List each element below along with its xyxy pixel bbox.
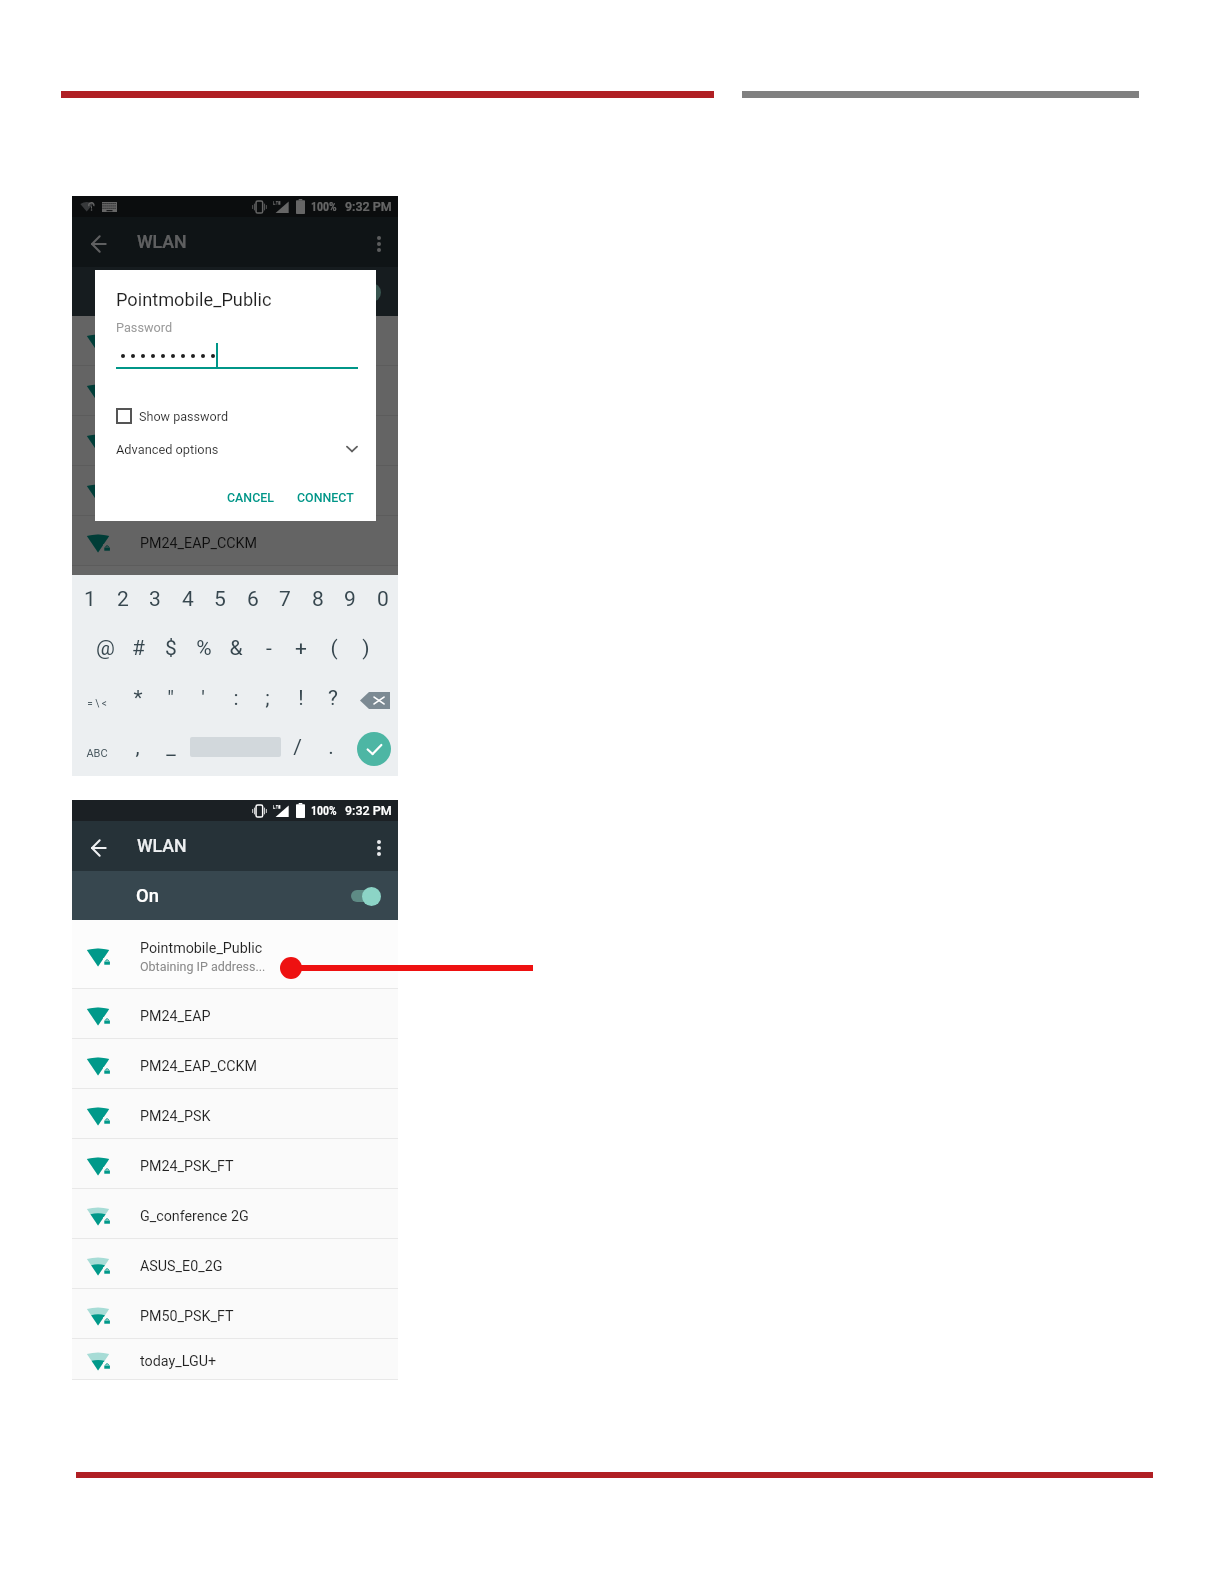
staticText: 0 <box>377 587 389 612</box>
button[interactable]: - <box>252 636 285 662</box>
staticText: ? <box>328 686 338 711</box>
staticText: " <box>167 686 174 711</box>
staticText: 100% <box>311 804 337 818</box>
button[interactable]: % <box>187 636 220 662</box>
button[interactable]: # <box>122 636 155 662</box>
staticText: / <box>293 735 302 760</box>
button[interactable]: More options <box>366 229 392 255</box>
staticText: 1 <box>84 587 96 612</box>
button[interactable]: _ <box>154 735 187 761</box>
staticText: & <box>229 636 243 661</box>
staticText: ) <box>362 636 370 661</box>
staticText: PM24_EAP_CCKM <box>140 1058 258 1075</box>
button[interactable]: 2 <box>106 587 139 613</box>
staticText: CONNECT <box>297 490 354 505</box>
button[interactable]: $ <box>154 636 187 662</box>
button[interactable]: CANCEL <box>221 482 280 512</box>
button[interactable]: G_conference 2G <box>72 1189 398 1239</box>
button[interactable]: @ <box>89 636 122 662</box>
staticText: ABC <box>86 747 108 760</box>
button[interactable]: / <box>281 735 314 761</box>
button[interactable]: , <box>121 735 154 761</box>
button[interactable]: + <box>284 636 317 662</box>
button[interactable]: 1 <box>73 587 106 613</box>
button[interactable]: 8 <box>301 587 334 613</box>
staticText: ASUS_E0_2G <box>140 1258 223 1275</box>
staticText: : <box>233 686 239 711</box>
staticText: _ <box>166 735 176 760</box>
staticText: PM24_EAP <box>140 1008 211 1025</box>
staticText: $ <box>165 636 177 661</box>
staticText: 7 <box>279 587 291 612</box>
button[interactable]: 6 <box>236 587 269 613</box>
staticText: % <box>196 636 212 661</box>
staticText: CANCEL <box>227 490 274 505</box>
button[interactable]: Advanced options <box>116 436 358 462</box>
button[interactable]: . <box>314 735 347 761</box>
staticText: . <box>328 735 334 760</box>
button[interactable]: Enter <box>357 732 391 766</box>
button[interactable]: Show password <box>116 401 229 431</box>
button[interactable]: ; <box>251 686 284 712</box>
button[interactable]: ! <box>284 686 317 712</box>
staticText: PM24_EAP_CCKM <box>140 535 258 552</box>
button[interactable]: ABC <box>73 745 121 761</box>
staticText: 9 <box>344 587 356 612</box>
button[interactable]: & <box>219 636 252 662</box>
staticText: On <box>136 885 159 907</box>
button[interactable]: PM50_PSK_FT <box>72 1289 398 1339</box>
button[interactable]: " <box>154 686 187 712</box>
button[interactable]: ( <box>317 636 350 662</box>
button[interactable]: 0 <box>366 587 399 613</box>
staticText: 100% <box>311 200 337 214</box>
button[interactable]: PM24_PSK_FT <box>72 1139 398 1189</box>
staticText: = \ < <box>87 698 107 710</box>
staticText: Pointmobile_Public <box>140 940 263 957</box>
button[interactable]: PM24_EAP_CCKM <box>72 1039 398 1089</box>
button[interactable]: On <box>72 871 398 920</box>
button[interactable]: * <box>121 686 154 712</box>
button[interactable]: ) <box>349 636 382 662</box>
staticText: 5 <box>214 587 226 612</box>
staticText: 3 <box>149 587 161 612</box>
button[interactable]: : <box>219 686 252 712</box>
button[interactable]: CONNECT <box>291 482 359 512</box>
button[interactable]: Back <box>84 832 112 860</box>
staticText: 9:32 PM <box>345 199 392 214</box>
staticText: Show password <box>139 409 229 424</box>
button[interactable]: Back <box>84 228 112 256</box>
button[interactable]: ASUS_E0_2G <box>72 1239 398 1289</box>
staticText: # <box>132 636 145 661</box>
staticText: PM24_PSK <box>140 1108 211 1125</box>
button[interactable]: today_LGU+ <box>72 1339 398 1380</box>
button[interactable]: 3 <box>138 587 171 613</box>
staticText: 4 <box>182 587 194 612</box>
button[interactable]: 4 <box>171 587 204 613</box>
staticText: Obtaining IP address... <box>140 959 266 974</box>
button[interactable]: 7 <box>268 587 301 613</box>
staticText: ( <box>330 636 338 661</box>
staticText: ! <box>298 686 304 711</box>
staticText: On <box>136 281 159 303</box>
staticText: ; <box>265 686 270 711</box>
staticText: PM24_PSK_FT <box>140 1158 234 1175</box>
button[interactable]: PM24_EAP <box>72 989 398 1039</box>
staticText: ' <box>201 686 205 711</box>
button[interactable]: PM24_PSK <box>72 1089 398 1139</box>
button[interactable]: 9 <box>333 587 366 613</box>
button[interactable]: More options <box>366 833 392 859</box>
button[interactable]: ? <box>316 686 349 712</box>
button[interactable]: 5 <box>203 587 236 613</box>
staticText: 6 <box>247 587 259 612</box>
staticText: today_LGU+ <box>140 1353 217 1370</box>
staticText: , <box>135 735 140 760</box>
button[interactable]: Pointmobile_Public <box>72 920 398 989</box>
button[interactable]: ' <box>186 686 219 712</box>
button[interactable]: = \ < <box>73 696 121 712</box>
staticText: - <box>266 636 272 661</box>
staticText: + <box>295 636 307 661</box>
staticText: 9:32 PM <box>345 803 392 818</box>
staticText: Password <box>116 320 173 335</box>
button[interactable]: Backspace <box>360 692 390 709</box>
